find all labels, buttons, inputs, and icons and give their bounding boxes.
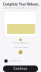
staticText: Complete Your Onboarding xyxy=(3,3,41,6)
button[interactable]: Continue xyxy=(3,65,38,72)
staticText: Verify your email address xyxy=(11,42,29,44)
staticText: Continue xyxy=(13,67,27,70)
staticText: I agree to the Terms xyxy=(9,60,22,62)
staticText: Then you are all set xyxy=(14,46,27,48)
staticText: Just a few more steps to finish setting … xyxy=(3,7,37,9)
